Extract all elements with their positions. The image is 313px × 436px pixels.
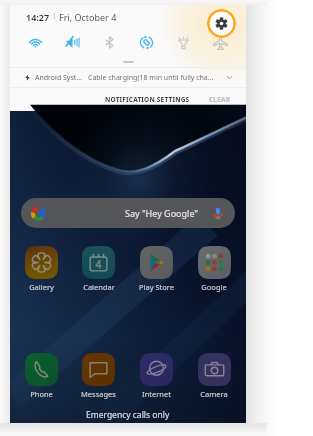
button[interactable]: Calendar: [70, 246, 127, 292]
staticText: CLEAR: [209, 95, 231, 104]
button[interactable]: Internet: [127, 353, 185, 399]
button[interactable]: Settings: [207, 9, 236, 38]
button[interactable]: Bluetooth: [91, 28, 128, 56]
staticText: Internet: [142, 389, 171, 399]
button[interactable]: Play Store: [127, 246, 185, 292]
button[interactable]: NOTIFICATION SETTINGS: [102, 91, 193, 108]
button[interactable]: CLEAR: [206, 91, 234, 108]
button[interactable]: Sound off: [54, 28, 91, 56]
staticText: Android Syst...: [35, 73, 82, 83]
button[interactable]: Say "Hey Google": [21, 198, 235, 228]
staticText: Cable charging(18 min until fully cha...: [88, 73, 214, 83]
button[interactable]: Google: [185, 246, 243, 292]
button[interactable]: Android Syst...: [24, 68, 233, 87]
staticText: Gallery: [29, 282, 54, 292]
staticText: Emergency calls only: [86, 409, 170, 421]
button[interactable]: Wi-Fi: [16, 28, 54, 56]
button[interactable]: Phone: [13, 353, 70, 399]
button[interactable]: Flashlight: [165, 28, 202, 56]
staticText: Phone: [30, 389, 53, 399]
staticText: Fri, October 4: [59, 11, 117, 23]
staticText: Say "Hey Google": [125, 207, 199, 219]
staticText: Camera: [200, 389, 228, 399]
button[interactable]: Camera: [185, 353, 243, 399]
staticText: Google: [201, 282, 227, 292]
button[interactable]: Gallery: [13, 246, 70, 292]
staticText: Play Store: [139, 282, 174, 292]
staticText: Messages: [81, 389, 116, 399]
staticText: NOTIFICATION SETTINGS: [105, 95, 190, 104]
button[interactable]: Auto rotate: [128, 28, 165, 56]
staticText: Calendar: [83, 282, 115, 292]
button[interactable]: Airplane mode: [202, 28, 239, 56]
staticText: 14:27: [26, 11, 50, 23]
button[interactable]: Messages: [70, 353, 127, 399]
